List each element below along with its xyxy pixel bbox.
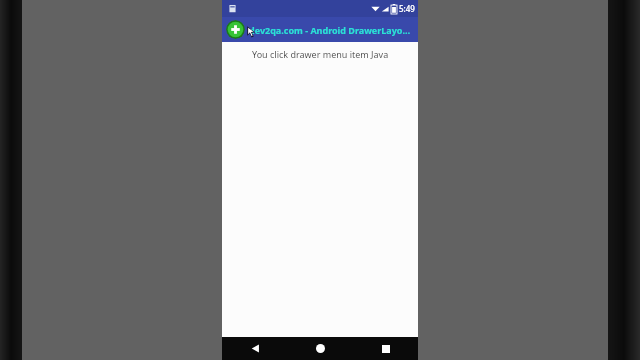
button[interactable]: Recent apps [353, 337, 418, 360]
button[interactable]: Home [288, 337, 353, 360]
button[interactable]: Back [222, 337, 288, 360]
staticText: 5:49 [399, 3, 415, 14]
staticText: You click drawer menu item Java [252, 48, 389, 60]
button[interactable]: Open navigation drawer [226, 20, 245, 39]
staticText: dev2qa.com - Android DrawerLayo… [249, 24, 411, 36]
